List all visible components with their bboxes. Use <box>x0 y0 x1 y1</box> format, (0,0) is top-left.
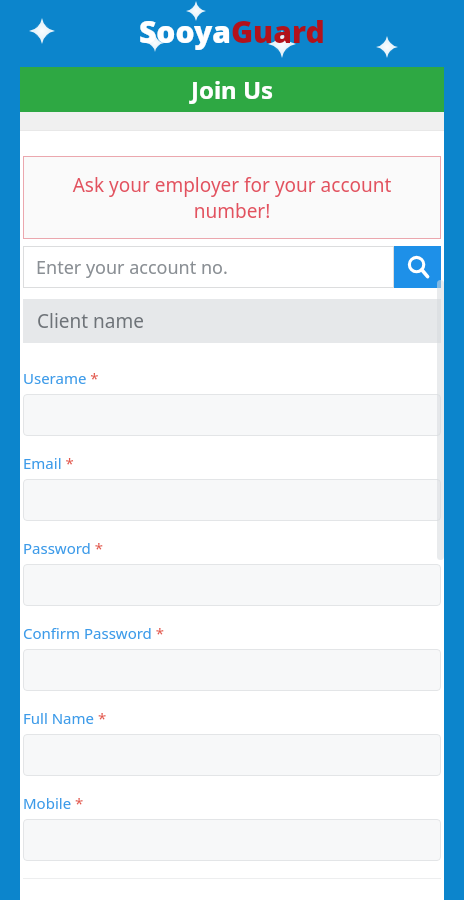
staticText: Join Us <box>191 73 274 106</box>
button[interactable] <box>23 649 441 691</box>
staticText: Ask your employer for your account numbe… <box>35 172 429 224</box>
button[interactable] <box>23 819 441 861</box>
staticText: Mobile * <box>23 793 84 813</box>
button[interactable]: Client name <box>23 299 441 343</box>
staticText: Password * <box>23 538 104 558</box>
staticText: Client name <box>37 308 144 334</box>
button[interactable] <box>23 394 441 436</box>
button[interactable] <box>23 479 441 521</box>
staticText: Email * <box>23 453 74 473</box>
staticText: Full Name * <box>23 708 107 728</box>
button[interactable] <box>23 734 441 776</box>
button[interactable]: Enter your account no. <box>23 246 394 288</box>
button[interactable]: Ask your employer for your account numbe… <box>23 156 441 239</box>
button[interactable] <box>23 564 441 606</box>
staticText: Enter your account no. <box>36 255 228 280</box>
staticText: Userame * <box>23 368 99 388</box>
button[interactable]: Join Us <box>20 67 444 112</box>
button[interactable]: Search account number <box>394 246 441 288</box>
staticText: SooyaGuard <box>139 11 325 52</box>
staticText: Confirm Password * <box>23 623 164 643</box>
